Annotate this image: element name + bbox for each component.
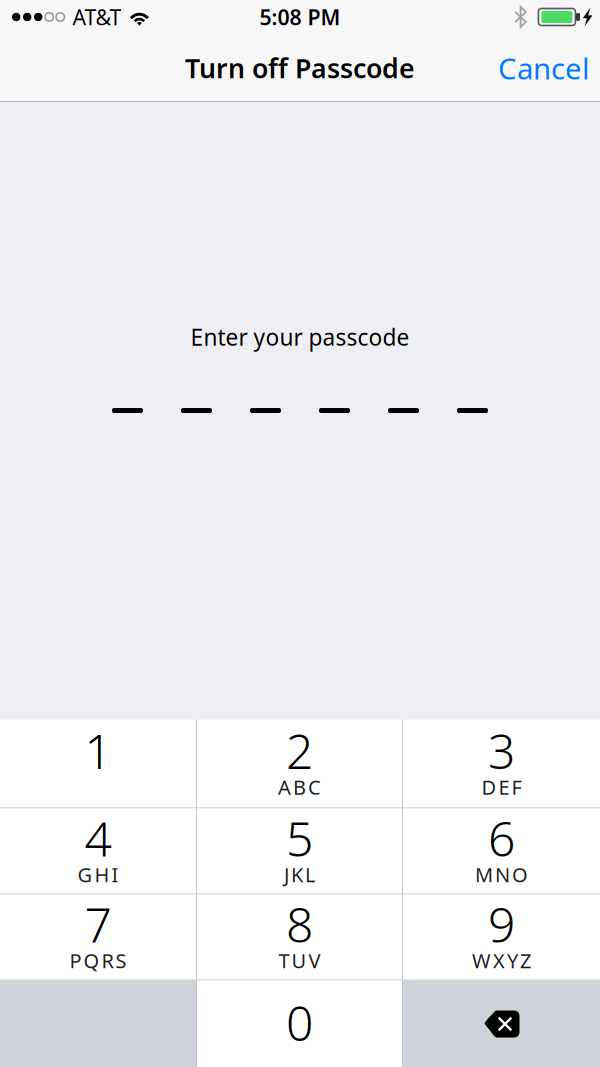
staticText: 5:08 PM xyxy=(259,3,340,31)
staticText: 7 xyxy=(84,892,111,956)
staticText: Enter your passcode xyxy=(190,322,409,352)
staticText: W X Y Z xyxy=(472,947,531,974)
button[interactable]: 1 xyxy=(0,719,196,807)
staticText: T U V xyxy=(278,947,320,974)
staticText: 4 xyxy=(84,806,111,870)
button[interactable]: 3 xyxy=(403,719,600,807)
staticText: 5 xyxy=(286,806,313,870)
button[interactable]: 2 xyxy=(197,719,402,807)
staticText: 0 xyxy=(286,991,313,1054)
staticText: 1 xyxy=(84,719,111,782)
staticText: 8 xyxy=(286,892,313,956)
staticText: G H I xyxy=(77,861,118,888)
staticText: J K L xyxy=(284,861,315,888)
staticText: P Q R S xyxy=(69,947,126,974)
button[interactable]: 5 xyxy=(197,808,402,893)
staticText: 2 xyxy=(286,719,313,782)
staticText: A B C xyxy=(278,774,321,800)
staticText: 6 xyxy=(488,806,515,870)
button[interactable]: Cancel xyxy=(482,36,600,99)
staticText: Turn off Passcode xyxy=(185,50,415,86)
staticText: Cancel xyxy=(498,48,590,87)
button[interactable]: 9 xyxy=(403,894,600,979)
button[interactable]: 7 xyxy=(0,894,196,979)
button[interactable]: Delete xyxy=(403,980,600,1067)
staticText: M N O xyxy=(475,861,528,888)
staticText: 9 xyxy=(488,892,515,956)
staticText: AT&T xyxy=(72,3,121,31)
staticText: 3 xyxy=(488,719,515,782)
staticText: D E F xyxy=(481,774,521,800)
button[interactable]: 8 xyxy=(197,894,402,979)
button[interactable]: 6 xyxy=(403,808,600,893)
button[interactable]: 4 xyxy=(0,808,196,893)
button[interactable]: 0 xyxy=(197,980,402,1067)
